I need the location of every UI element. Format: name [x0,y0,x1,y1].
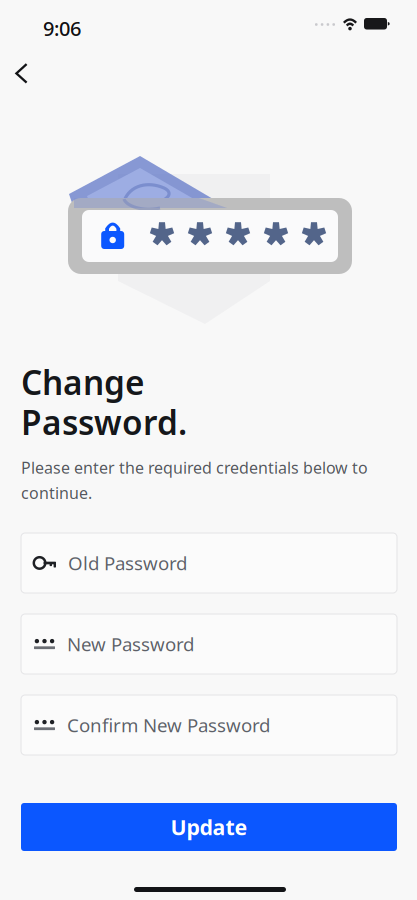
staticText: 9:06 [43,15,81,42]
button[interactable]: Back [4,51,48,95]
button[interactable]: Update [21,803,397,851]
staticText: Please enter the required credentials be… [21,457,368,503]
button[interactable]: New Password [21,614,397,674]
staticText: Password. [21,400,187,444]
staticText: Change [21,360,145,404]
staticText: Old Password [68,551,187,575]
button[interactable]: Confirm New Password [21,695,397,755]
staticText: New Password [67,632,194,656]
staticText: Update [170,813,247,841]
staticText: Confirm New Password [67,713,270,737]
button[interactable]: Old Password [21,533,397,593]
